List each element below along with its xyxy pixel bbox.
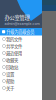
button[interactable]: 升级为高级会员 [0,28,42,35]
button[interactable]: 关于 [0,84,42,91]
staticText: 收藏夹 [6,57,18,63]
staticText: 共享文件 [6,43,22,49]
button[interactable]: 设置 [0,70,42,77]
staticText: 帮助 [6,78,14,84]
button[interactable]: 回收站 [0,63,42,70]
button[interactable]: 最近使用 [0,49,42,56]
button[interactable]: 共享文件 [0,42,42,49]
button[interactable]: 收藏夹 [0,56,42,63]
staticText: 设置 [6,71,14,77]
staticText: 办公室管理 [4,14,29,21]
button[interactable]: 帮助 [0,77,42,84]
staticText: 我的文件 [6,36,22,42]
staticText: 最近使用 [6,50,22,56]
staticText: 升级为高级会员 [6,29,34,35]
button[interactable]: 我的文件 [0,35,42,42]
staticText: 关于 [6,85,14,91]
staticText: admin@example.com [4,21,39,26]
staticText: 回收站 [6,64,18,70]
